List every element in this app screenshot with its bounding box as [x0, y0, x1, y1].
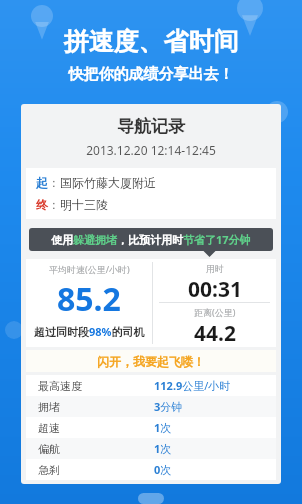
button[interactable]: 闪开，我要起飞喽！ [26, 350, 276, 372]
button[interactable]: App icon [138, 493, 164, 504]
staticText: 超过同时段98%的司机 [34, 324, 145, 339]
button[interactable]: 急刹 [26, 459, 276, 480]
staticText: 00:31 [188, 275, 242, 302]
button[interactable]: 使用躲避拥堵，比预计用时节省了17分钟 [29, 228, 273, 251]
staticText: 3分钟 [154, 399, 183, 414]
staticText: 距离(公里) [194, 306, 236, 318]
staticText: 0次 [154, 462, 172, 477]
staticText: 使用躲避拥堵，比预计用时节省了17分钟 [51, 232, 251, 247]
staticText: 44.2 [194, 319, 236, 347]
staticText: 急刹 [38, 463, 60, 477]
staticText: 112.9公里/小时 [154, 378, 231, 393]
button[interactable]: 偏航 [26, 438, 276, 459]
button[interactable]: 拥堵 [26, 396, 276, 417]
staticText: 超速 [38, 421, 60, 435]
staticText: 闪开，我要起飞喽！ [97, 354, 205, 369]
button[interactable]: 超速 [26, 417, 276, 438]
staticText: 85.2 [57, 277, 121, 321]
staticText: 最高速度 [38, 379, 82, 393]
staticText: 1次 [154, 420, 172, 435]
staticText: 偏航 [38, 442, 60, 456]
button[interactable]: 最高速度 [26, 375, 276, 396]
staticText: 用时 [206, 263, 224, 274]
staticText: 拼速度、省时间 [0, 26, 302, 57]
staticText: 快把你的成绩分享出去！ [0, 65, 302, 84]
staticText: 2013.12.20 12:14-12:45 [21, 142, 281, 158]
staticText: 终：明十三陵 [36, 197, 108, 212]
staticText: 拥堵 [38, 400, 60, 414]
staticText: 导航记录 [21, 116, 281, 137]
staticText: 1次 [154, 441, 172, 456]
staticText: 平均时速(公里/小时) [49, 263, 130, 275]
staticText: 起：国际竹藤大厦附近 [36, 175, 156, 190]
